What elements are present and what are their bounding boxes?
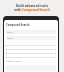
button[interactable] bbox=[6, 55, 56, 59]
button[interactable]: View all results bbox=[6, 60, 22, 63]
button[interactable] bbox=[6, 43, 56, 47]
button[interactable]: Search bbox=[6, 30, 56, 34]
staticText: Search bbox=[7, 31, 13, 34]
staticText: Build advanced tools with Compound Searc… bbox=[0, 4, 64, 12]
button[interactable] bbox=[6, 47, 56, 51]
button[interactable]: Search bbox=[6, 36, 56, 40]
staticText: Search bbox=[7, 37, 13, 40]
button[interactable] bbox=[6, 51, 56, 55]
staticText: Compound Search bbox=[6, 23, 30, 27]
